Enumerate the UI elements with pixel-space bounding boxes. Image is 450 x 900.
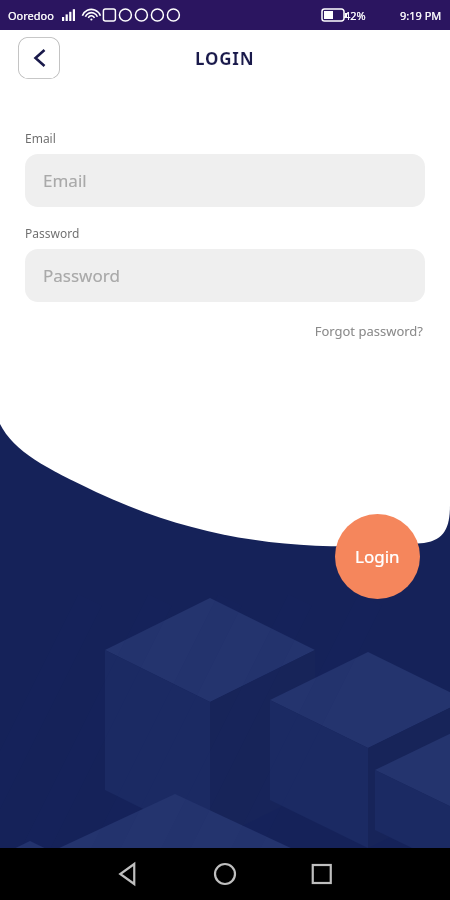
button[interactable]: Forgot password? [312, 320, 425, 342]
button[interactable]: Back [18, 37, 60, 79]
staticText: Forgot password? [314, 322, 423, 340]
staticText: LOGIN [195, 47, 255, 70]
staticText: Password [25, 225, 80, 241]
staticText: Password [43, 264, 120, 287]
staticText: Ooredoo [8, 8, 54, 23]
staticText: Email [43, 169, 87, 192]
button[interactable]: Password [25, 249, 425, 302]
staticText: Email [25, 130, 56, 146]
staticText: 9:19 PM [400, 8, 442, 23]
staticText: 42% [344, 8, 366, 23]
button[interactable]: Login [335, 514, 420, 599]
staticText: Login [355, 545, 400, 568]
button[interactable]: Email [25, 154, 425, 207]
